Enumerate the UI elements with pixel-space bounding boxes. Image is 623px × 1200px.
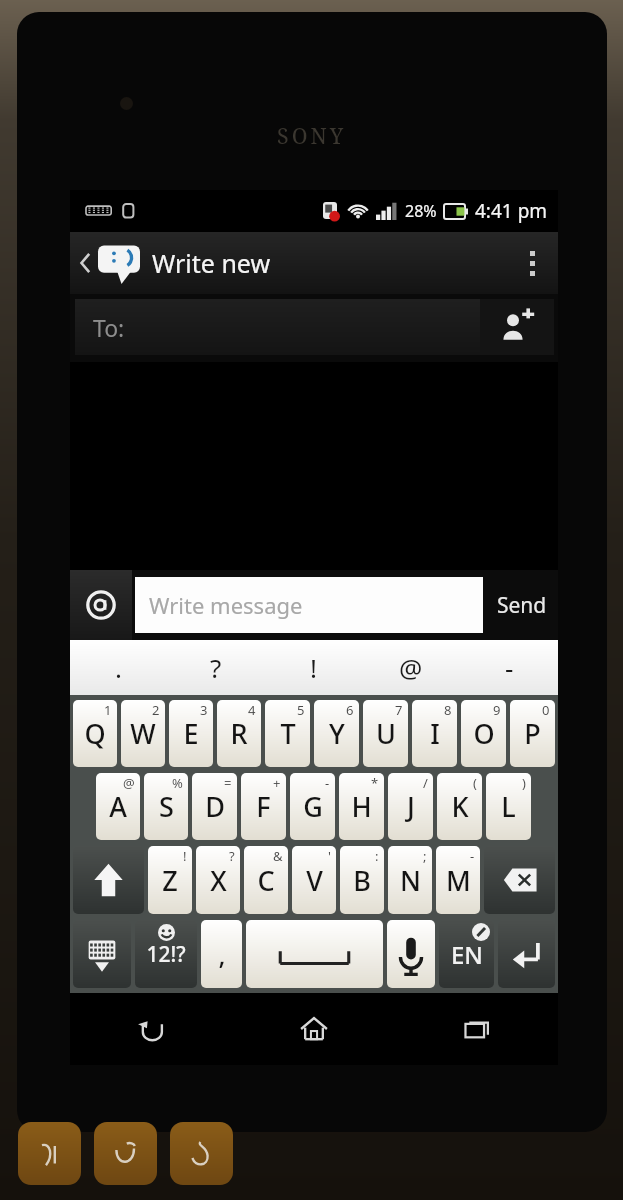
button[interactable]: A [96, 773, 140, 840]
button[interactable]: @ [362, 640, 460, 695]
staticText: EN [451, 938, 483, 971]
button[interactable]: Y [314, 700, 359, 767]
button[interactable]: , [201, 920, 242, 988]
staticText: @ [399, 650, 423, 685]
staticText: & [273, 847, 283, 865]
button[interactable]: O [461, 700, 506, 767]
button[interactable]: Recent apps [395, 993, 558, 1065]
button[interactable]: K [437, 773, 482, 840]
button[interactable]: G [290, 773, 335, 840]
button[interactable]: W [121, 700, 165, 767]
button[interactable]: 12!? [135, 920, 197, 988]
button[interactable]: App 3 [170, 1122, 233, 1185]
staticText: 4 [248, 701, 256, 719]
button[interactable]: N [388, 846, 432, 914]
button[interactable]: X [196, 846, 240, 914]
staticText: / [423, 774, 428, 792]
button[interactable]: S [144, 773, 188, 840]
button[interactable]: App 1 [18, 1122, 81, 1185]
staticText: % [172, 774, 183, 792]
button[interactable]: Write new [70, 232, 506, 294]
staticText: - [505, 650, 514, 685]
staticText: - [325, 774, 330, 792]
staticText: To: [93, 312, 125, 343]
staticText: Y [329, 715, 345, 752]
staticText: Write new [152, 246, 271, 280]
button[interactable]: - [460, 640, 558, 695]
button[interactable]: Q [73, 700, 117, 767]
button[interactable]: App 2 [94, 1122, 157, 1185]
staticText: ' [328, 847, 331, 865]
staticText: 6 [346, 701, 354, 719]
button[interactable]: Add recipient [480, 299, 554, 355]
button[interactable]: Send [486, 570, 558, 640]
button[interactable]: Enter [498, 920, 555, 988]
staticText: 1 [104, 701, 112, 719]
staticText: - [470, 847, 475, 865]
staticText: 3 [200, 701, 208, 719]
staticText: R [230, 715, 248, 752]
button[interactable]: D [192, 773, 237, 840]
staticText: ! [310, 650, 317, 685]
button[interactable]: Space [246, 920, 383, 988]
staticText: 8 [444, 701, 452, 719]
staticText: N [400, 862, 421, 899]
staticText: X [210, 862, 227, 899]
staticText: M [446, 862, 471, 899]
staticText: 7 [395, 701, 403, 719]
button[interactable]: F [241, 773, 286, 840]
staticText: 4:41 pm [475, 198, 548, 224]
staticText: ! [183, 847, 187, 865]
staticText: H [351, 788, 372, 825]
staticText: I [430, 715, 440, 752]
staticText: = [224, 774, 232, 792]
button[interactable]: E [169, 700, 213, 767]
staticText: D [205, 788, 225, 825]
staticText: F [256, 788, 271, 825]
button[interactable]: Z [148, 846, 192, 914]
staticText: 0 [542, 701, 550, 719]
button[interactable]: Back [70, 993, 232, 1065]
button[interactable]: Shift [73, 846, 144, 914]
button[interactable]: V [292, 846, 336, 914]
button[interactable]: Write message [135, 577, 483, 633]
button[interactable]: Voice input [387, 920, 435, 988]
staticText: Z [162, 862, 178, 899]
staticText: L [501, 788, 516, 825]
button[interactable]: M [436, 846, 480, 914]
staticText: G [303, 788, 323, 825]
button[interactable]: I [412, 700, 457, 767]
button[interactable]: Home [232, 993, 395, 1065]
staticText: O [473, 715, 495, 752]
button[interactable]: Backspace [484, 846, 555, 914]
button[interactable]: ! [264, 640, 362, 695]
staticText: P [524, 715, 541, 752]
button[interactable]: ? [167, 640, 264, 695]
button[interactable]: T [265, 700, 310, 767]
staticText: ) [522, 774, 526, 792]
staticText: B [353, 862, 371, 899]
button[interactable]: More options [506, 232, 558, 294]
staticText: : [375, 847, 379, 865]
button[interactable]: H [339, 773, 384, 840]
staticText: 5 [297, 701, 305, 719]
button[interactable]: U [363, 700, 408, 767]
staticText: SONY [277, 122, 347, 151]
staticText: J [407, 788, 415, 825]
button[interactable]: . [70, 640, 167, 695]
button[interactable]: R [217, 700, 261, 767]
button[interactable]: C [244, 846, 288, 914]
button[interactable]: Attach [70, 570, 132, 640]
button[interactable]: L [486, 773, 531, 840]
staticText: . [115, 650, 122, 685]
staticText: T [280, 715, 296, 752]
staticText: * [371, 774, 379, 792]
button[interactable]: To: [75, 299, 480, 355]
staticText: E [183, 715, 199, 752]
button[interactable]: B [340, 846, 384, 914]
button[interactable]: Hide keyboard [73, 920, 131, 988]
button[interactable]: EN [439, 920, 494, 988]
button[interactable]: P [510, 700, 555, 767]
staticText: ; [423, 847, 427, 865]
button[interactable]: J [388, 773, 433, 840]
